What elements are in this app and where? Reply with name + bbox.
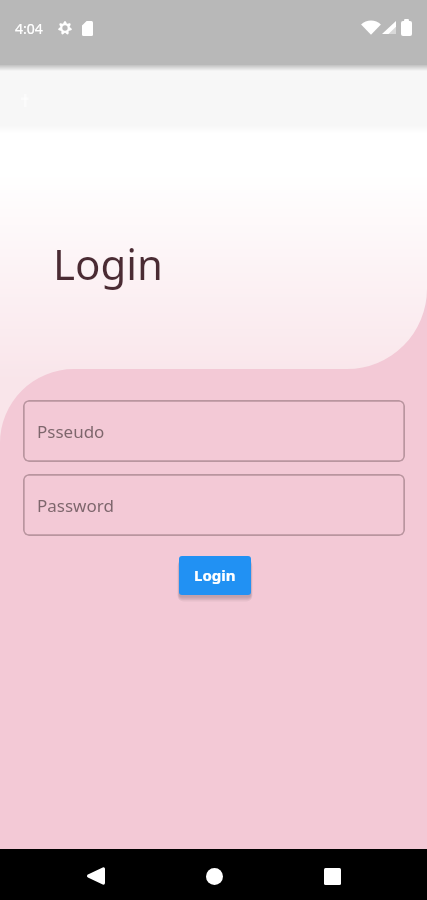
staticText: Password [37, 494, 114, 517]
staticText: Login [194, 565, 236, 585]
staticText: Login [53, 235, 164, 292]
button[interactable]: Home [190, 852, 238, 900]
staticText: 4:04 [15, 19, 43, 38]
staticText: Psseudo [37, 420, 105, 443]
button[interactable]: Login [179, 556, 251, 595]
button[interactable]: Recent apps [308, 852, 356, 900]
button[interactable]: Back [72, 852, 120, 900]
button[interactable]: Psseudo [23, 400, 405, 462]
button[interactable]: Password [23, 474, 405, 536]
